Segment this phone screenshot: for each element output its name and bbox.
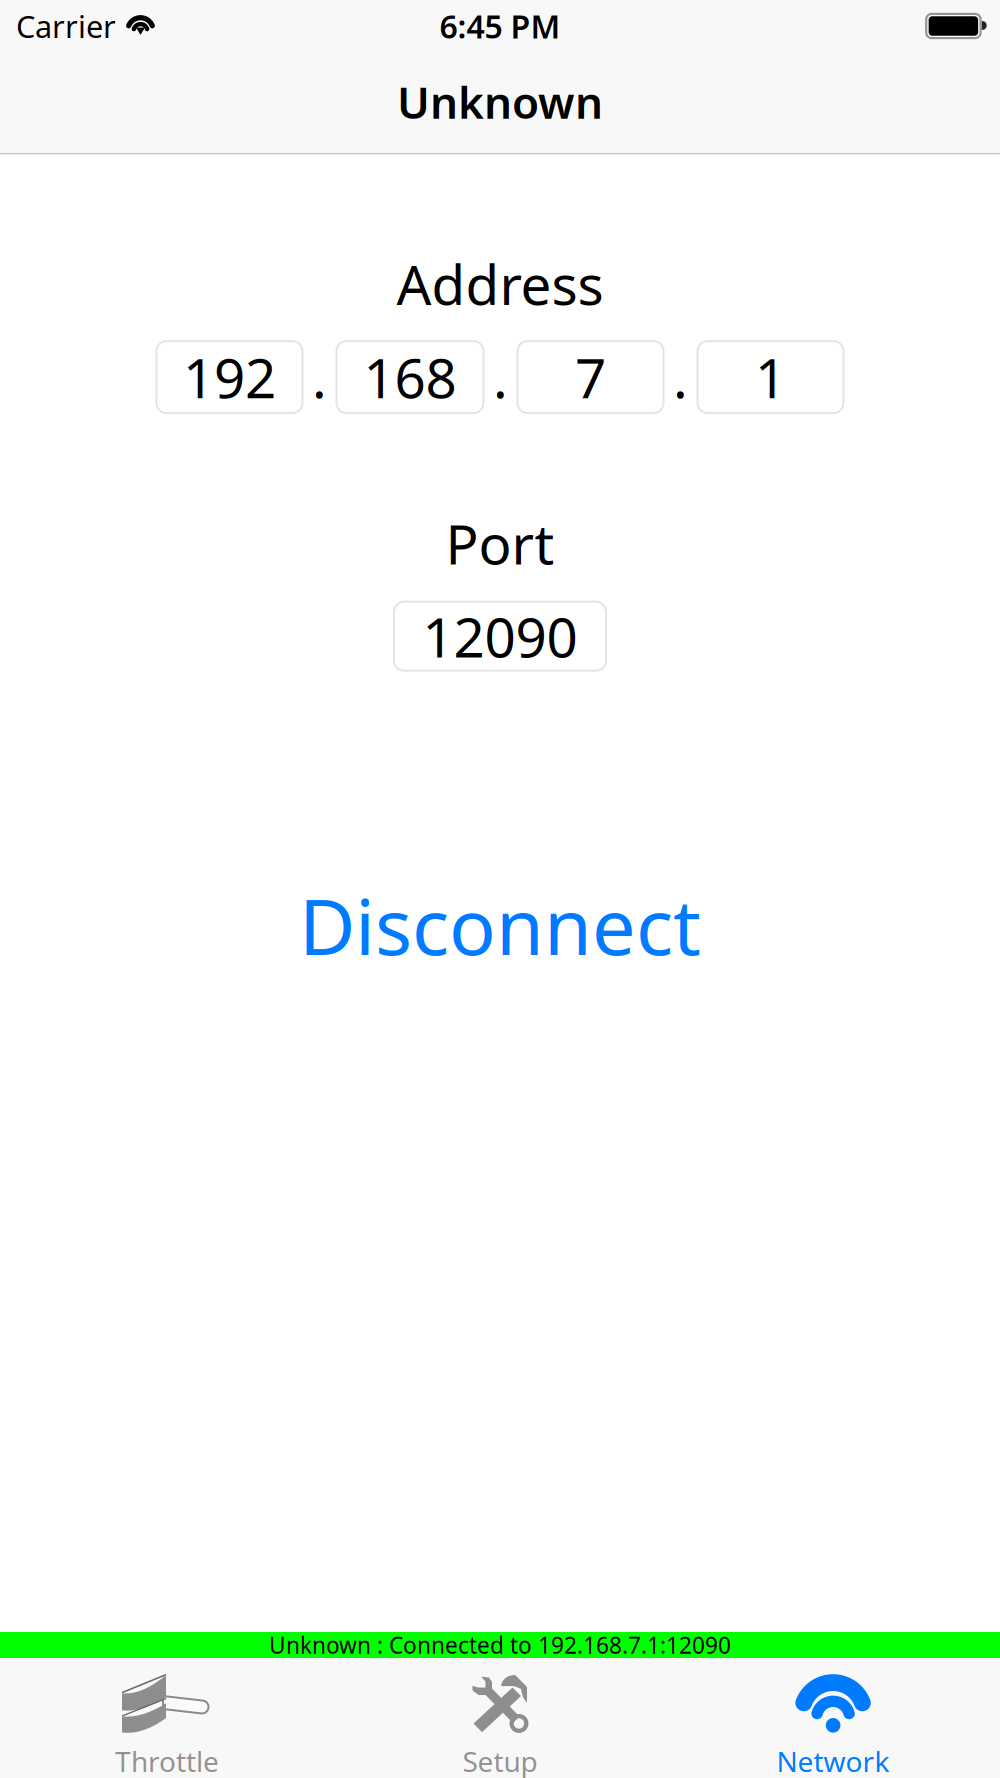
staticText: . [493, 341, 508, 413]
button[interactable]: 7 [517, 341, 663, 413]
button[interactable]: 168 [336, 341, 483, 413]
button[interactable]: Network [666, 1658, 999, 1778]
staticText: 12090 [422, 600, 577, 672]
staticText: Port [445, 507, 554, 580]
button[interactable]: 192 [156, 341, 302, 413]
button[interactable]: 1 [697, 341, 843, 413]
staticText: 168 [363, 341, 456, 413]
staticText: 192 [183, 341, 276, 413]
staticText: Address [396, 247, 603, 320]
staticText: Unknown : Connected to 192.168.7.1:12090 [269, 1630, 731, 1660]
staticText: Disconnect [299, 874, 701, 976]
staticText: Throttle [115, 1742, 219, 1778]
staticText: . [673, 341, 688, 413]
button[interactable]: 12090 [394, 602, 606, 671]
staticText: Network [776, 1742, 889, 1778]
button[interactable]: Setup [333, 1658, 666, 1778]
staticText: 7 [575, 341, 606, 413]
button[interactable]: Disconnect [299, 874, 701, 976]
staticText: Carrier [16, 6, 116, 46]
button[interactable]: Throttle [0, 1658, 333, 1778]
staticText: 6:45 PM [439, 5, 560, 47]
staticText: Setup [462, 1742, 537, 1778]
staticText: . [312, 341, 327, 413]
staticText: Unknown [397, 73, 603, 131]
staticText: 1 [755, 341, 786, 413]
